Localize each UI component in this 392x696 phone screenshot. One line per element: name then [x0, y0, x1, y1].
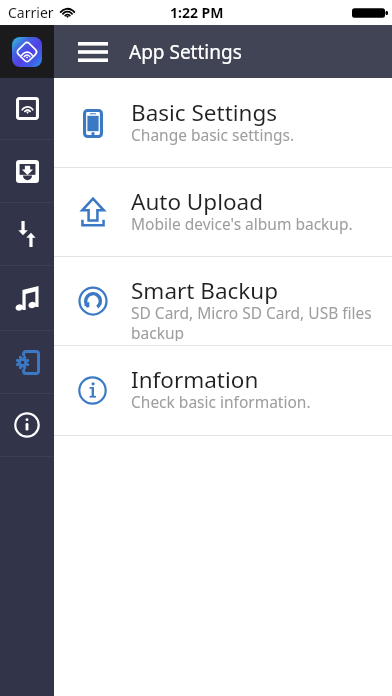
staticText: Smart Backup: [131, 275, 279, 306]
button[interactable]: Nav item: [0, 266, 54, 330]
button[interactable]: Smart Backup: [54, 257, 392, 345]
staticText: Basic Settings: [131, 97, 278, 128]
staticText: App Settings: [129, 39, 242, 65]
staticText: Check basic information.: [131, 391, 311, 412]
button[interactable]: Basic Settings: [54, 79, 392, 167]
button[interactable]: Information: [54, 346, 392, 435]
button[interactable]: Nav item: [0, 140, 54, 202]
button[interactable]: Nav item: [0, 394, 54, 456]
staticText: Auto Upload: [131, 186, 264, 217]
staticText: Carrier: [8, 3, 54, 22]
button[interactable]: Menu: [54, 25, 108, 78]
staticText: SD Card, Micro SD Card, USB files backup: [131, 302, 372, 341]
staticText: Mobile device's album backup.: [131, 213, 353, 234]
button[interactable]: Auto Upload: [54, 168, 392, 256]
staticText: 1:22 PM: [170, 3, 224, 22]
button[interactable]: Nav item: [0, 78, 54, 139]
button[interactable]: App: [12, 37, 42, 67]
button[interactable]: Nav item: [0, 203, 54, 265]
button[interactable]: Nav item: [0, 331, 54, 393]
staticText: Information: [131, 364, 259, 395]
staticText: Change basic settings.: [131, 124, 295, 145]
